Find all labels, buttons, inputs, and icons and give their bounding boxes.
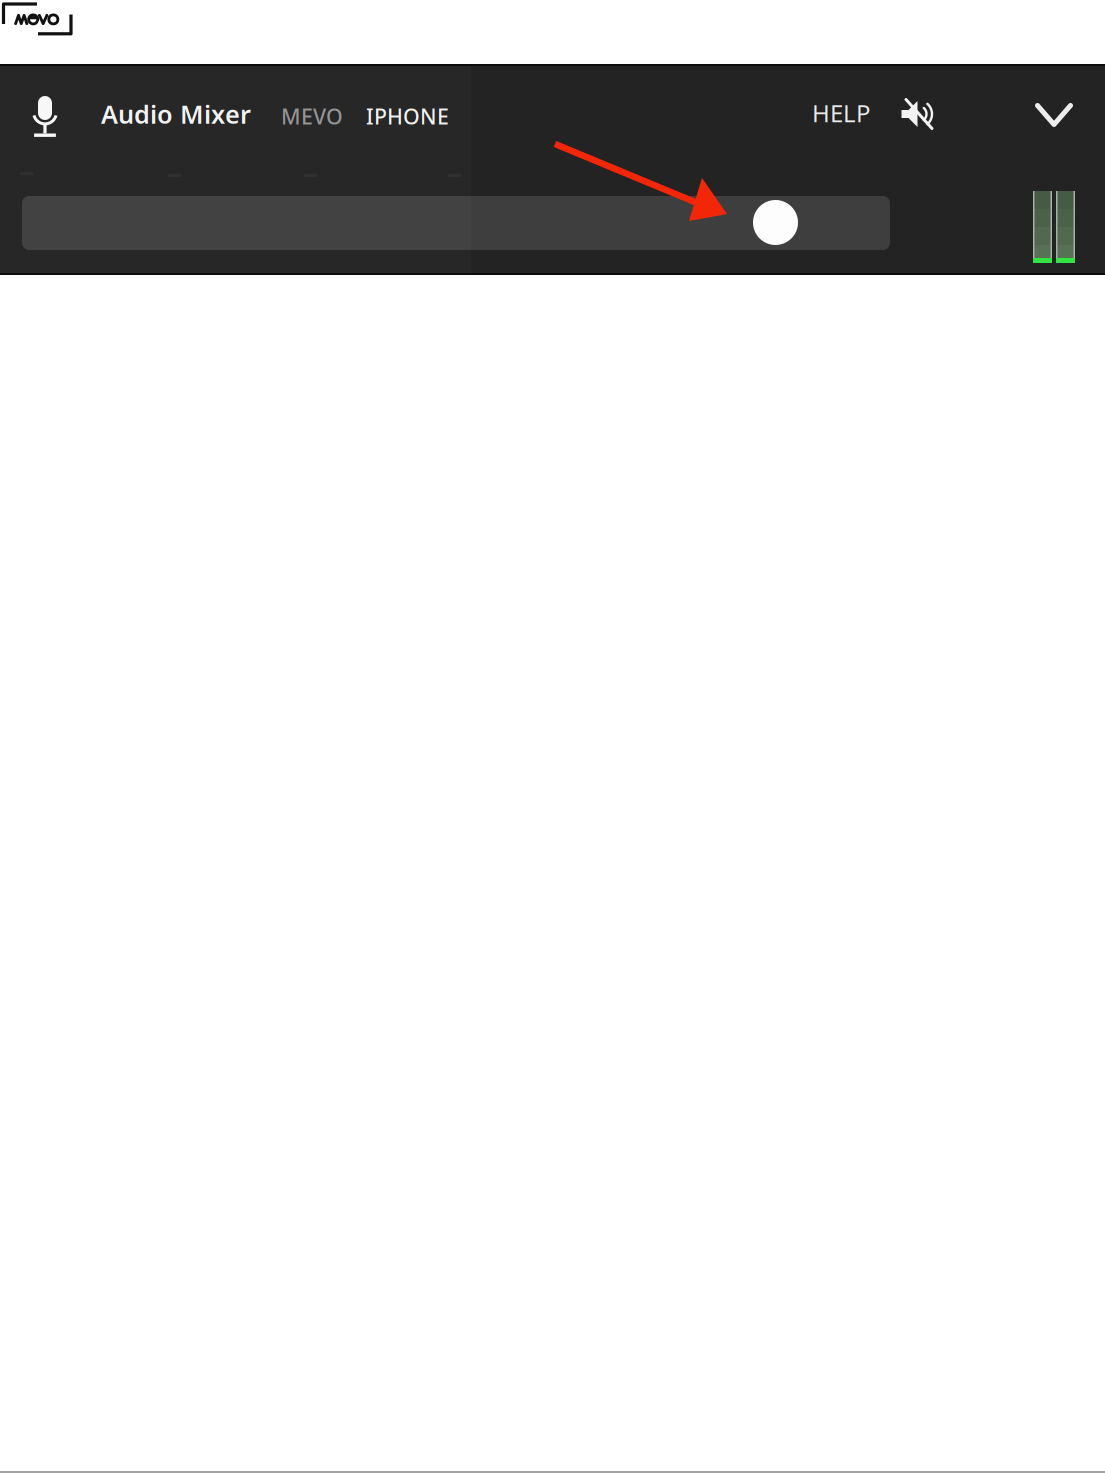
staticText: HELP bbox=[812, 97, 871, 129]
button[interactable]: Microphone bbox=[21, 88, 69, 146]
staticText: IPHONE bbox=[366, 102, 449, 130]
button[interactable]: IPHONE bbox=[356, 94, 459, 138]
button[interactable]: Collapse audio mixer bbox=[1026, 90, 1082, 140]
staticText: Audio Mixer bbox=[101, 97, 251, 131]
button[interactable]: iPhone microphone level bbox=[22, 196, 890, 250]
button[interactable]: Unmute bbox=[891, 89, 945, 139]
button[interactable]: HELP bbox=[802, 89, 881, 137]
button[interactable]: MEVO bbox=[271, 94, 353, 138]
button[interactable]: Mevo home bbox=[0, 0, 78, 40]
staticText: MEVO bbox=[281, 102, 343, 130]
